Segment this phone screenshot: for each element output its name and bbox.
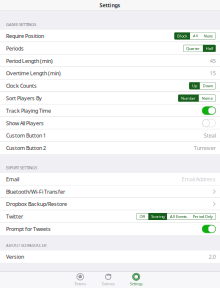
staticText: Block (177, 33, 187, 39)
staticText: Email Address (182, 176, 216, 183)
staticText: Dropbox Backup/Restore (6, 200, 67, 208)
button[interactable]: Quarter (183, 45, 203, 52)
staticText: Version (6, 253, 24, 260)
button[interactable]: Version (0, 250, 220, 263)
button[interactable]: Scoring (148, 213, 167, 220)
button[interactable]: Down (200, 82, 216, 89)
staticText: Games (102, 281, 115, 286)
button[interactable]: Custom Button 2 (0, 142, 220, 154)
button[interactable]: Switch off (202, 119, 216, 127)
button[interactable]: Email (0, 173, 220, 185)
button[interactable]: None (201, 32, 216, 39)
staticText: 15 (210, 70, 216, 77)
button[interactable]: Show All Players (0, 117, 220, 129)
staticText: Sort Players By (6, 95, 42, 102)
staticText: All (193, 33, 198, 39)
staticText: Down (203, 83, 213, 88)
button[interactable]: Name (199, 95, 216, 102)
staticText: Quarter (186, 46, 200, 51)
staticText: Turnover (194, 144, 216, 151)
button[interactable]: Half (203, 45, 216, 52)
staticText: Overtime Length (min) (6, 70, 61, 77)
button[interactable]: Games (94, 271, 122, 288)
button[interactable]: Overtime Length (min) (0, 67, 220, 79)
staticText: Period Length (min) (6, 57, 53, 64)
staticText: Custom Button 1 (6, 132, 46, 139)
staticText: Bluetooth/Wi-Fi Transfer (6, 188, 65, 195)
button[interactable]: Bluetooth/Wi-Fi Transfer (0, 185, 220, 198)
button[interactable]: Period Length (min) (0, 55, 220, 67)
button[interactable]: Periods (0, 42, 220, 55)
staticText: Off (139, 214, 145, 219)
staticText: EXPORT SETTINGS (6, 165, 37, 170)
staticText: Track Playing Time (6, 107, 51, 114)
button[interactable]: All (190, 32, 201, 39)
staticText: Settings (99, 2, 120, 9)
button[interactable]: Settings (122, 271, 150, 288)
button[interactable]: Switch on (202, 107, 216, 114)
button[interactable]: Twitter (0, 210, 220, 223)
staticText: Require Position (6, 32, 44, 39)
staticText: Clock Counts (6, 82, 37, 89)
staticText: Steal (204, 132, 216, 139)
staticText: Email (6, 176, 19, 183)
button[interactable]: Require Position (0, 30, 220, 42)
staticText: 45 (210, 57, 216, 64)
staticText: Custom Button 2 (6, 144, 46, 151)
button[interactable]: Clock Counts (0, 79, 220, 92)
staticText: Period Only (193, 214, 213, 219)
button[interactable]: Teams (66, 271, 94, 288)
staticText: Twitter (6, 213, 23, 220)
button[interactable]: Dropbox Backup/Restore (0, 198, 220, 210)
staticText: 2.0 (209, 253, 216, 260)
button[interactable]: Switch on (202, 225, 216, 233)
staticText: GAME SETTINGS (6, 22, 36, 27)
button[interactable]: Off (136, 213, 148, 220)
staticText: Half (206, 46, 213, 51)
staticText: Periods (6, 45, 24, 52)
staticText: All Events (170, 214, 187, 219)
staticText: Number (181, 95, 196, 101)
staticText: Up (192, 83, 197, 88)
staticText: Name (202, 95, 213, 101)
button[interactable]: Track Playing Time (0, 104, 220, 117)
button[interactable]: Up (189, 82, 200, 89)
button[interactable]: Prompt for Tweets (0, 223, 220, 235)
staticText: Scoring (151, 214, 164, 219)
staticText: Teams (74, 281, 86, 286)
staticText: ABOUT SCORESOCCER (6, 243, 46, 248)
button[interactable]: Sort Players By (0, 92, 220, 104)
staticText: Show All Players (6, 119, 44, 127)
staticText: Settings (130, 281, 143, 286)
button[interactable]: Block (174, 32, 190, 39)
button[interactable]: Period Only (190, 213, 216, 220)
staticText: None (204, 33, 213, 39)
button[interactable]: Number (178, 95, 199, 102)
button[interactable]: Custom Button 1 (0, 129, 220, 142)
button[interactable]: All Events (167, 213, 190, 220)
staticText: Prompt for Tweets (6, 225, 51, 232)
